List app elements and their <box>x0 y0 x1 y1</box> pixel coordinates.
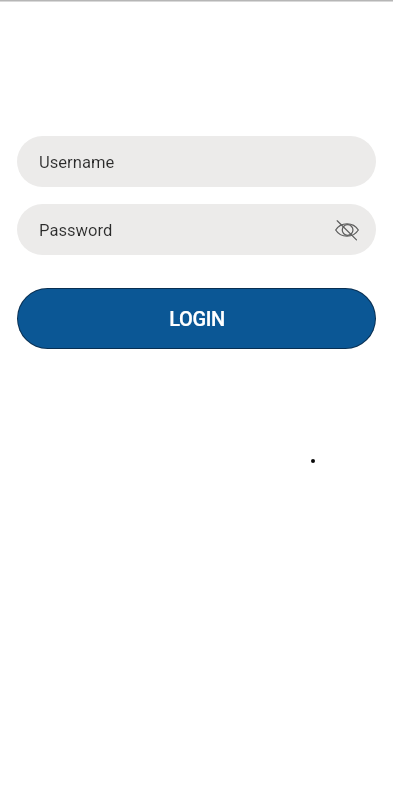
button[interactable]: Show password <box>328 211 366 249</box>
button[interactable]: Password <box>17 204 376 255</box>
staticText: Password <box>39 221 113 240</box>
button[interactable]: Username <box>17 136 376 187</box>
staticText: Username <box>39 153 115 172</box>
staticText: LOGIN <box>169 307 225 330</box>
button[interactable]: LOGIN <box>17 288 376 349</box>
